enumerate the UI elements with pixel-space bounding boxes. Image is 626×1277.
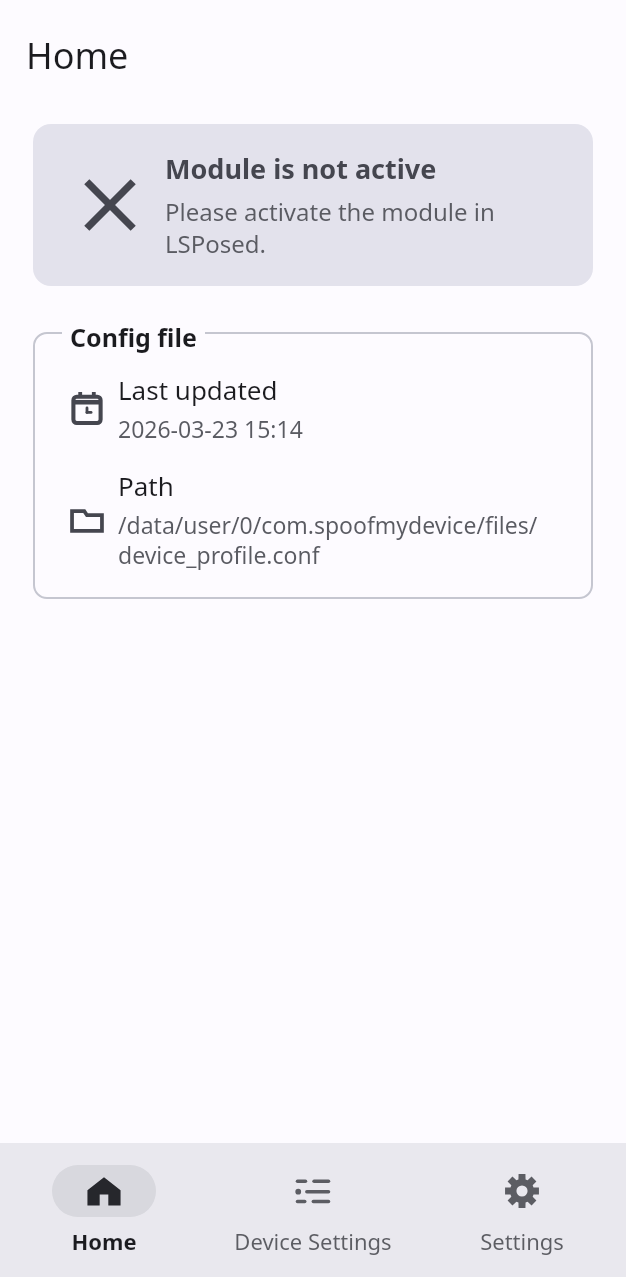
staticText: /data/user/0/com.spoofmydevice/files/dev…: [118, 509, 573, 571]
other: Home: [86, 1173, 122, 1209]
other: Last updated: [70, 391, 104, 425]
button[interactable]: Last updated: [33, 332, 593, 599]
staticText: Module is not active: [165, 150, 437, 187]
staticText: Home: [71, 1226, 137, 1256]
other: Path: [70, 503, 104, 537]
staticText: Config file: [70, 320, 197, 354]
button[interactable]: Settings: [417, 1143, 626, 1256]
button[interactable]: Device Settings: [208, 1143, 417, 1256]
other: Device Settings: [295, 1173, 331, 1209]
other: Settings: [504, 1173, 540, 1209]
staticText: Last updated: [118, 372, 278, 407]
button[interactable]: Home: [0, 1143, 208, 1256]
staticText: Home: [26, 31, 129, 80]
staticText: Device Settings: [234, 1226, 392, 1256]
staticText: Please activate the module in LSPosed.: [165, 195, 573, 260]
button[interactable]: Module is not active: [33, 124, 593, 286]
staticText: 2026-03-23 15:14: [118, 413, 303, 444]
staticText: Path: [118, 468, 174, 503]
staticText: Settings: [480, 1226, 564, 1256]
